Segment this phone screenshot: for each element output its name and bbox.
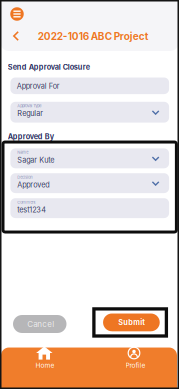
staticText: Decision (17, 175, 32, 180)
button[interactable]: Home (22, 343, 66, 373)
staticText: Regular (17, 109, 43, 118)
staticText: Approval Type (17, 103, 41, 108)
button[interactable]: Profile (112, 343, 156, 373)
staticText: 2022-1016 ABC Project (38, 30, 149, 42)
button[interactable]: Cancel (13, 315, 66, 333)
button[interactable]: Submit (94, 309, 166, 336)
staticText: Send Approval Closure (8, 63, 90, 71)
staticText: Comment (17, 200, 35, 205)
staticText: Approval For (17, 82, 60, 91)
button[interactable]: Back (7, 27, 25, 45)
staticText: Cancel (27, 319, 54, 329)
staticText: Submit (118, 318, 145, 327)
staticText: Approved (17, 180, 49, 189)
staticText: test1234 (17, 205, 46, 214)
staticText: Home (35, 361, 54, 369)
staticText: Sagar Kute (17, 156, 54, 164)
staticText: Approved By (8, 132, 54, 141)
staticText: Name (17, 150, 28, 155)
staticText: Profile (125, 361, 145, 369)
button[interactable]: Menu (6, 3, 28, 25)
